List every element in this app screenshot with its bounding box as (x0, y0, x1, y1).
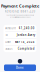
staticText: Amount (5, 26, 16, 30)
staticText: Payment Complete (1, 3, 39, 9)
staticText: To (5, 33, 8, 37)
staticText: Completed (18, 47, 35, 50)
staticText: Reference 8841-220 (4, 10, 35, 13)
staticText: Status (5, 47, 12, 50)
staticText: Your transfer has been sent and should a… (6, 14, 34, 18)
staticText: Done (16, 66, 24, 69)
button[interactable]: Done (4, 64, 36, 71)
staticText: Mar 14, 2024 (15, 40, 35, 44)
staticText: $1,240.00 (19, 26, 35, 30)
staticText: Jordan Avery (17, 33, 35, 37)
staticText: Date (5, 40, 11, 44)
